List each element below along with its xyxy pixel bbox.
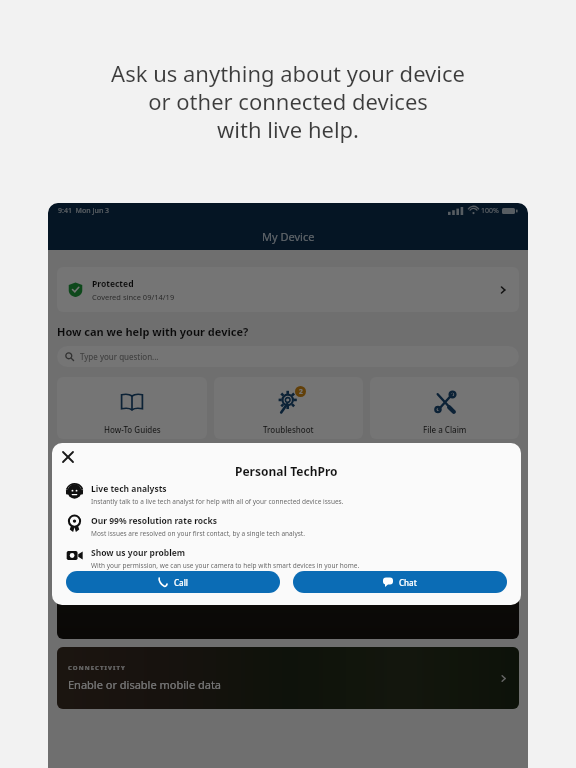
staticText: How can we help with your device? — [57, 324, 249, 339]
staticText: Our 99% resolution rate rocks — [91, 515, 218, 527]
button[interactable]: How-To Guides — [57, 377, 207, 439]
button[interactable]: Type your question... — [57, 346, 519, 367]
staticText: Call — [174, 577, 188, 588]
staticText: Ask us anything about your device or oth… — [111, 58, 465, 144]
staticText: Protected — [92, 278, 134, 290]
staticText: Enable or disable mobile data — [68, 677, 222, 692]
staticText: How-To Guides — [104, 424, 161, 435]
staticText: With your permission, we can use your ca… — [91, 561, 360, 570]
button[interactable]: Close — [60, 449, 76, 465]
button[interactable]: Chat — [293, 571, 507, 593]
button[interactable]: File a Claim — [370, 377, 519, 439]
staticText: 100% — [481, 206, 499, 216]
staticText: My Device — [262, 229, 315, 244]
staticText: Show us your problem — [91, 547, 186, 559]
staticText: CONNECTIVITY — [68, 664, 126, 672]
staticText: Most issues are resolved on your first c… — [91, 529, 305, 538]
staticText: Personal TechPro — [235, 463, 338, 479]
staticText: Live tech analysts — [91, 483, 167, 495]
button[interactable]: Show us your problem — [66, 547, 507, 570]
button[interactable]: Protected — [57, 267, 519, 312]
staticText: Type your question... — [80, 351, 159, 362]
staticText: Chat — [399, 577, 417, 588]
staticText: File a Claim — [423, 424, 467, 435]
button[interactable]: Live tech analysts — [66, 483, 507, 506]
staticText: Troubleshoot — [263, 424, 314, 435]
button[interactable]: 2 — [214, 377, 363, 439]
button[interactable]: Our 99% resolution rate rocks — [66, 515, 507, 538]
staticText: Covered since 09/14/19 — [92, 292, 175, 302]
button[interactable] — [57, 449, 519, 639]
staticText: 9:41 Mon Jun 3 — [58, 206, 110, 216]
staticText: 2 — [299, 387, 303, 396]
staticText: Instantly talk to a live tech analyst fo… — [91, 497, 344, 506]
button[interactable]: Call — [66, 571, 280, 593]
button[interactable]: CONNECTIVITY — [57, 647, 519, 709]
